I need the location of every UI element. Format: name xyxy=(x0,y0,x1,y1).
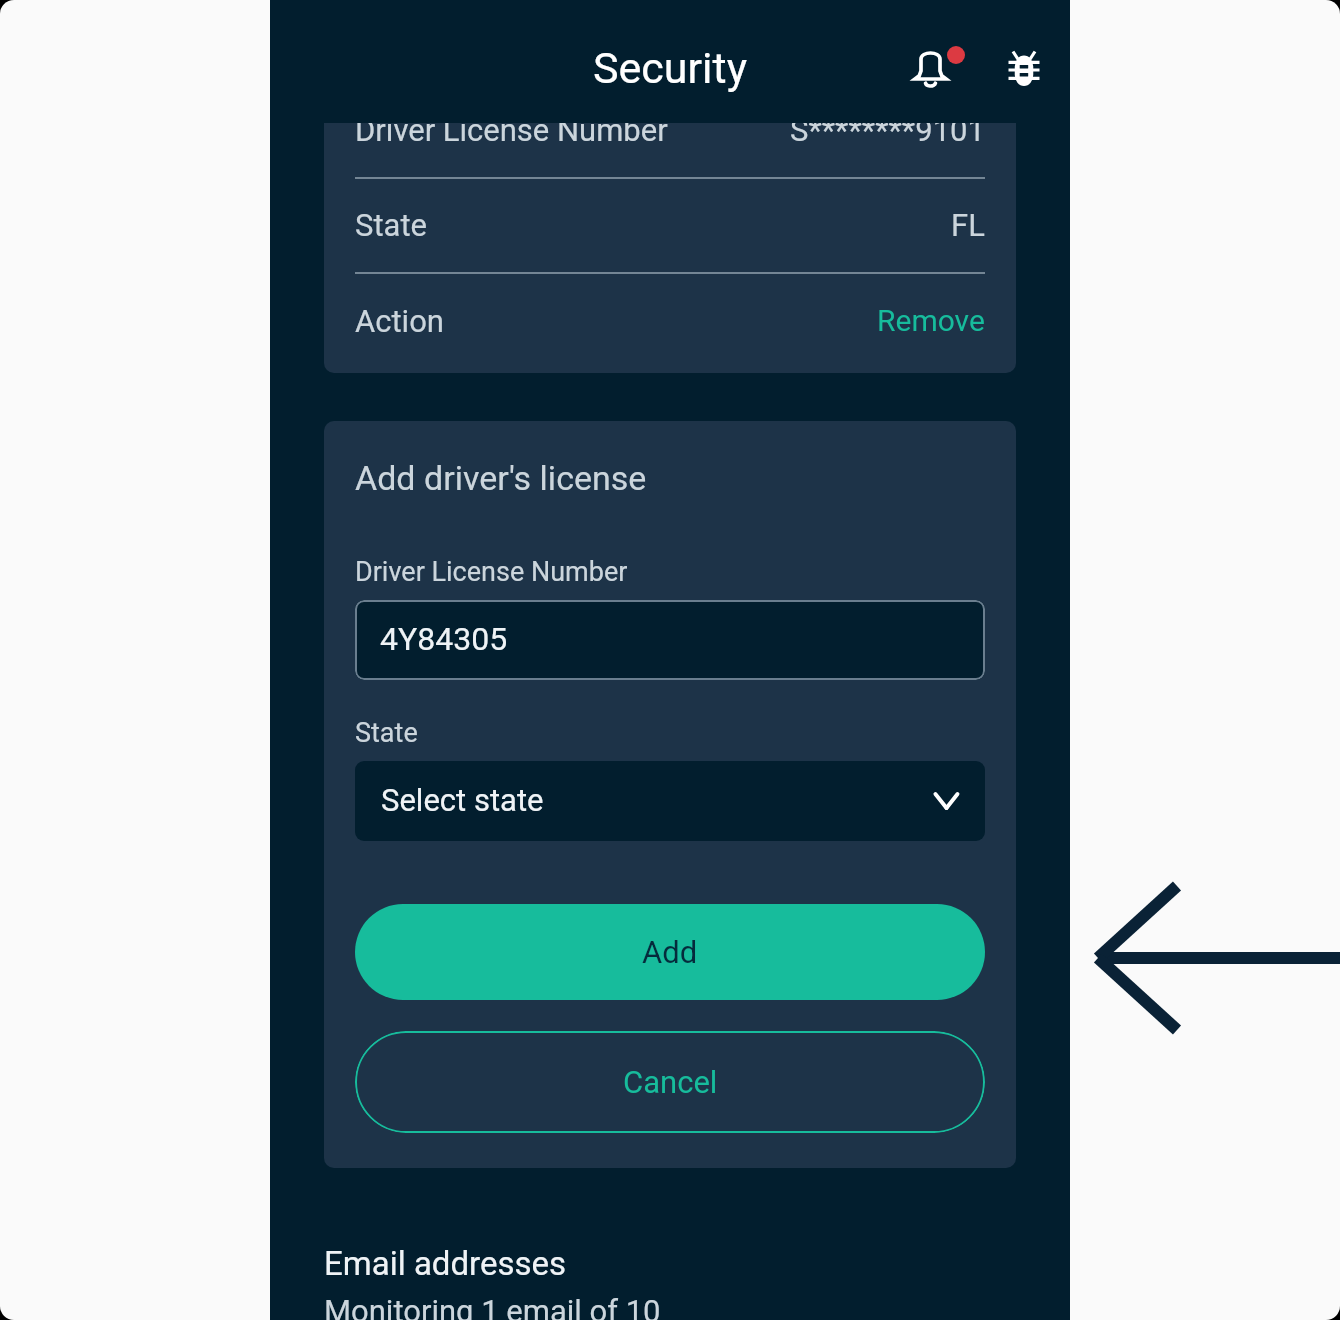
staticText: Security xyxy=(593,43,747,93)
button[interactable]: Select state xyxy=(355,761,985,841)
staticText: Driver License Number xyxy=(355,123,668,148)
staticText: Select state xyxy=(381,782,544,818)
staticText: Remove xyxy=(877,303,985,338)
button[interactable]: 4Y84305 xyxy=(355,600,985,680)
button[interactable]: Cancel xyxy=(355,1031,985,1133)
staticText: Monitoring 1 email of 10 xyxy=(324,1293,661,1320)
staticText: Email addresses xyxy=(324,1244,567,1283)
staticText: 4Y84305 xyxy=(380,620,508,658)
staticText: FL xyxy=(951,207,985,243)
staticText: S********9101 xyxy=(790,123,985,148)
button[interactable]: Notifications xyxy=(905,38,965,98)
button[interactable]: Add xyxy=(355,904,985,1000)
staticText: Driver License Number xyxy=(355,556,628,588)
staticText: Action xyxy=(355,303,444,339)
staticText: Add driver's license xyxy=(355,458,647,498)
button[interactable]: Remove xyxy=(877,303,985,338)
button[interactable]: Report a bug xyxy=(1004,48,1044,88)
staticText: Cancel xyxy=(623,1064,718,1100)
staticText: State xyxy=(355,717,418,749)
staticText: Add xyxy=(642,934,698,970)
staticText: State xyxy=(355,207,427,243)
